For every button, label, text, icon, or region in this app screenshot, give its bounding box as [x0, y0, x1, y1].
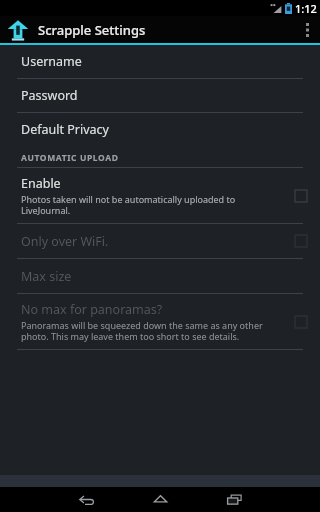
staticText: Scrapple Settings — [38, 21, 146, 39]
staticText: Default Privacy — [21, 121, 109, 138]
button[interactable]: Home — [133, 487, 187, 512]
staticText: Photos taken will not be automatically u… — [21, 193, 276, 216]
button[interactable]: More options — [294, 16, 320, 43]
button[interactable]: Up — [5, 17, 31, 43]
button[interactable]: No max for panoramas? — [0, 294, 320, 349]
button[interactable]: Recent apps — [207, 487, 261, 512]
button[interactable]: Enable — [282, 179, 320, 213]
button[interactable]: Enable — [0, 168, 320, 223]
staticText: Username — [21, 53, 82, 70]
button[interactable]: Default Privacy — [0, 113, 320, 146]
staticText: Enable — [21, 175, 61, 192]
button[interactable]: Password — [0, 79, 320, 112]
staticText: Panoramas will be squeezed down the same… — [21, 319, 276, 342]
button[interactable]: Max size — [0, 259, 320, 293]
staticText: 1:12 — [295, 1, 317, 16]
button[interactable]: Only over WiFi. — [0, 224, 320, 258]
staticText: AUTOMATIC UPLOAD — [21, 152, 119, 164]
staticText: Max size — [21, 268, 72, 285]
button[interactable]: Username — [0, 45, 320, 78]
staticText: Password — [21, 87, 78, 104]
button[interactable]: Back — [59, 487, 113, 512]
staticText: Only over WiFi. — [21, 233, 109, 250]
staticText: No max for panoramas? — [21, 301, 163, 318]
